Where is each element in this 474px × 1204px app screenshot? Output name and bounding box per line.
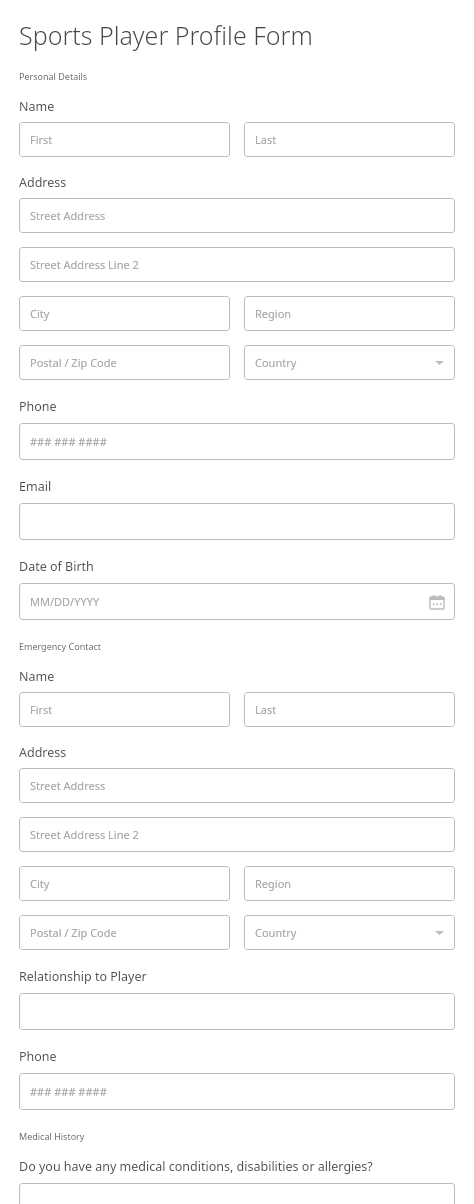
staticText: Street Address [30, 208, 106, 223]
staticText: Country [255, 925, 297, 940]
button[interactable]: Street Address [19, 198, 455, 233]
button[interactable]: ### ### #### [19, 1073, 455, 1110]
button[interactable]: Street Address [19, 768, 455, 803]
staticText: Region [255, 306, 292, 321]
button[interactable]: City [19, 866, 230, 901]
button[interactable]: City [19, 296, 230, 331]
staticText: Street Address [30, 778, 106, 793]
button[interactable]: First [19, 122, 230, 157]
button[interactable]: ### ### #### [19, 423, 455, 460]
staticText: Date of Birth [19, 558, 94, 575]
staticText: Name [19, 98, 55, 115]
staticText: First [30, 702, 53, 717]
staticText: City [30, 306, 50, 321]
button[interactable]: Country [244, 915, 455, 950]
button[interactable]: Street Address Line 2 [19, 817, 455, 852]
staticText: First [30, 132, 53, 147]
button[interactable]: Region [244, 296, 455, 331]
button[interactable]: Last [244, 122, 455, 157]
staticText: MM/DD/YYYY [30, 594, 100, 609]
staticText: Address [19, 744, 67, 761]
staticText: Address [19, 174, 67, 191]
button[interactable]: Country [244, 345, 455, 380]
staticText: Street Address Line 2 [30, 257, 139, 272]
staticText: Phone [19, 398, 57, 415]
button[interactable]: Region [244, 866, 455, 901]
staticText: Region [255, 876, 292, 891]
staticText: Last [255, 132, 277, 147]
staticText: Last [255, 702, 277, 717]
staticText: Relationship to Player [19, 968, 147, 985]
staticText: Postal / Zip Code [30, 925, 117, 940]
staticText: ### ### #### [30, 1084, 107, 1099]
button[interactable] [19, 993, 455, 1030]
staticText: Do you have any medical conditions, disa… [19, 1158, 373, 1175]
staticText: Emergency Contact [19, 640, 102, 652]
staticText: Email [19, 478, 52, 495]
staticText: Personal Details [19, 70, 88, 82]
staticText: Medical History [19, 1130, 85, 1142]
staticText: Country [255, 355, 297, 370]
staticText: Name [19, 668, 55, 685]
button[interactable] [19, 503, 455, 540]
button[interactable] [19, 1183, 455, 1204]
staticText: ### ### #### [30, 434, 107, 449]
button[interactable]: MM/DD/YYYY [19, 583, 455, 620]
other: Pick date [430, 595, 444, 609]
staticText: Sports Player Profile Form [19, 18, 313, 52]
button[interactable]: Postal / Zip Code [19, 915, 230, 950]
staticText: Phone [19, 1048, 57, 1065]
staticText: Street Address Line 2 [30, 827, 139, 842]
button[interactable]: Street Address Line 2 [19, 247, 455, 282]
button[interactable]: Last [244, 692, 455, 727]
button[interactable]: First [19, 692, 230, 727]
staticText: Postal / Zip Code [30, 355, 117, 370]
button[interactable]: Postal / Zip Code [19, 345, 230, 380]
staticText: City [30, 876, 50, 891]
